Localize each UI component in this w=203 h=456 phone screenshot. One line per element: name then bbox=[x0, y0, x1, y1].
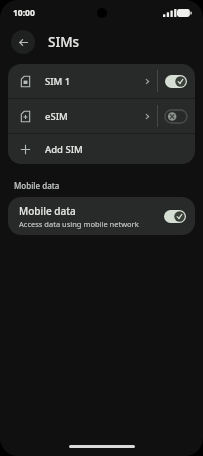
staticText: SIM 1 bbox=[45, 75, 145, 88]
staticText: Mobile data bbox=[19, 204, 76, 218]
button[interactable]: Add SIM bbox=[8, 134, 195, 164]
staticText: Mobile data bbox=[14, 180, 60, 191]
staticText: SIMs bbox=[48, 33, 80, 51]
button[interactable]: Back bbox=[11, 30, 35, 54]
button[interactable]: SIM 1 bbox=[8, 64, 195, 98]
staticText: Add SIM bbox=[45, 143, 83, 156]
staticText: Access data using mobile network bbox=[19, 219, 139, 229]
button[interactable]: eSIM bbox=[8, 99, 195, 133]
staticText: eSIM bbox=[45, 110, 145, 123]
staticText: 10:00 bbox=[13, 7, 35, 19]
button[interactable]: Mobile data bbox=[8, 197, 195, 235]
